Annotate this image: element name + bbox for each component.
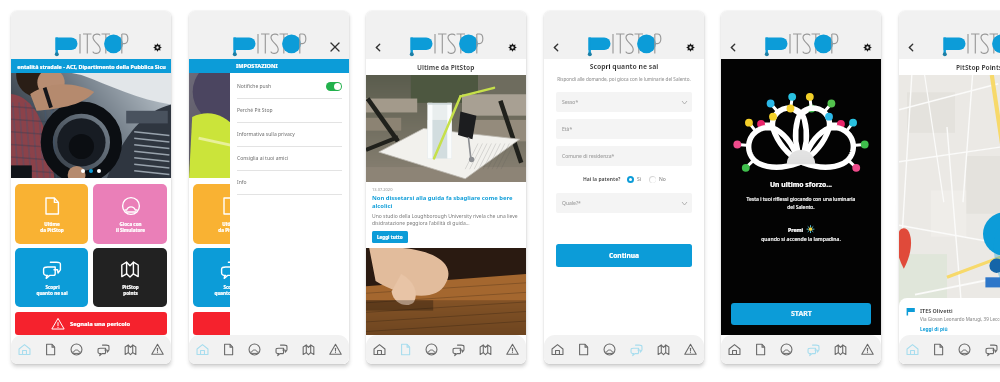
button[interactable]: No (649, 176, 656, 183)
button[interactable]: Punti (472, 335, 499, 364)
button[interactable]: Settings (149, 39, 165, 55)
button[interactable]: PitStop (93, 248, 167, 307)
button[interactable]: Leggi di più (920, 326, 948, 333)
staticText: Rispondi alle domande, poi gioca con le … (555, 76, 693, 82)
button[interactable]: Sesso* (556, 92, 692, 112)
button[interactable]: Gioca con (93, 184, 167, 244)
staticText: Sì (637, 176, 642, 183)
button[interactable]: Simulatore (596, 335, 623, 364)
button[interactable]: Home (189, 335, 215, 364)
button[interactable]: Home (721, 335, 747, 364)
staticText: I-ISTAT: in a (254, 63, 285, 70)
button[interactable]: Settings (682, 39, 698, 55)
button[interactable]: Segnala (499, 335, 526, 364)
button[interactable]: Punti (117, 335, 144, 364)
button[interactable]: Segnala una pericolo (15, 312, 167, 335)
button[interactable]: Simulatore (241, 335, 268, 364)
staticText: Non dissetarsi alla guida fa sbagliare c… (372, 194, 520, 210)
button[interactable]: Close (327, 39, 343, 55)
staticText: No (659, 176, 666, 183)
button[interactable]: Continua (556, 244, 692, 267)
button[interactable]: Età* (556, 119, 692, 139)
button[interactable]: Scopri (15, 248, 88, 307)
button[interactable]: Documenti (215, 335, 241, 364)
staticText: Uno studio della Loughborough University… (372, 213, 520, 227)
staticText: il Simulatore (116, 227, 145, 233)
staticText: Leggi tutto (377, 234, 403, 240)
button[interactable]: Punti (295, 335, 322, 364)
button[interactable]: Simulatore (773, 335, 800, 364)
button[interactable]: Gioca con (271, 184, 345, 244)
button[interactable]: Simulatore (241, 335, 268, 364)
button[interactable]: Simulatore (951, 335, 978, 364)
button[interactable]: Documenti (37, 335, 63, 364)
staticText: Scopri (223, 284, 238, 290)
button[interactable]: Back (902, 39, 918, 55)
button[interactable]: Notifiche push (230, 75, 349, 99)
button[interactable]: Ultime (15, 184, 88, 244)
button[interactable]: Back (547, 39, 563, 55)
button[interactable]: Consiglia ai tuoi amici (230, 147, 349, 171)
button[interactable]: Home (899, 335, 925, 364)
button[interactable]: Info (230, 171, 349, 195)
button[interactable]: Segnala (322, 335, 349, 364)
button[interactable]: Punti (650, 335, 677, 364)
button[interactable]: Scopri (193, 248, 266, 307)
button[interactable]: ITES Olivetti (906, 307, 1000, 333)
button[interactable]: Perché Pit Stop (230, 99, 349, 123)
button[interactable]: Quiz (800, 335, 827, 364)
button[interactable]: Quale?* (556, 193, 692, 213)
button[interactable]: Home (189, 335, 215, 364)
staticText: Informativa sulla privacy (237, 131, 295, 138)
staticText: entalità stradale - ACI, Dipartimento de… (17, 63, 166, 70)
staticText: START (791, 309, 812, 319)
button[interactable]: Punti (295, 335, 322, 364)
button[interactable]: Back (724, 39, 740, 55)
button[interactable]: Documenti (925, 335, 951, 364)
staticText: Testa i tuoi riflessi giocando con una l… (745, 196, 857, 210)
button[interactable]: Ultime (193, 184, 266, 244)
button[interactable]: Back (369, 39, 385, 55)
button[interactable]: Documenti (570, 335, 596, 364)
button[interactable]: Documenti (747, 335, 773, 364)
staticText: Comune di residenza* (562, 153, 615, 160)
staticText: PitStop Points (956, 63, 1000, 72)
button[interactable]: Segnala (322, 335, 349, 364)
staticText: Età* (562, 126, 573, 133)
staticText: quando si accende la lampadina. (721, 235, 881, 242)
button[interactable]: Home (11, 335, 37, 364)
button[interactable]: Quiz (623, 335, 650, 364)
button[interactable]: Segnala (854, 335, 881, 364)
staticText: Segnala una pericolo (70, 320, 131, 328)
button[interactable]: Punti (827, 335, 854, 364)
button[interactable]: Settings (504, 39, 520, 55)
button[interactable]: Documenti (392, 335, 418, 364)
staticText: da PitStop (218, 227, 242, 233)
button[interactable]: START (731, 303, 871, 325)
staticText: Continua (609, 251, 639, 260)
button[interactable]: Sì (627, 176, 634, 183)
button[interactable]: Quiz (90, 335, 117, 364)
button[interactable]: Documenti (215, 335, 241, 364)
button[interactable]: Quiz (978, 335, 1000, 364)
button[interactable]: Home (544, 335, 570, 364)
button[interactable]: Quiz (268, 335, 295, 364)
button[interactable]: Leggi tutto (372, 231, 408, 243)
button[interactable]: Comune di residenza* (556, 146, 692, 166)
button[interactable]: Segnala (677, 335, 704, 364)
button[interactable]: Simulatore (418, 335, 445, 364)
button[interactable]: Settings (859, 39, 875, 55)
button[interactable]: Simulatore (63, 335, 90, 364)
button[interactable]: Home (366, 335, 392, 364)
button[interactable]: Informativa sulla privacy (230, 123, 349, 147)
staticText: points (123, 290, 138, 296)
staticText: da PitStop (40, 227, 64, 233)
staticText: Hai la patente? (583, 176, 621, 183)
button[interactable]: Quiz (268, 335, 295, 364)
button[interactable]: Segnala (144, 335, 171, 364)
button[interactable]: Quiz (445, 335, 472, 364)
